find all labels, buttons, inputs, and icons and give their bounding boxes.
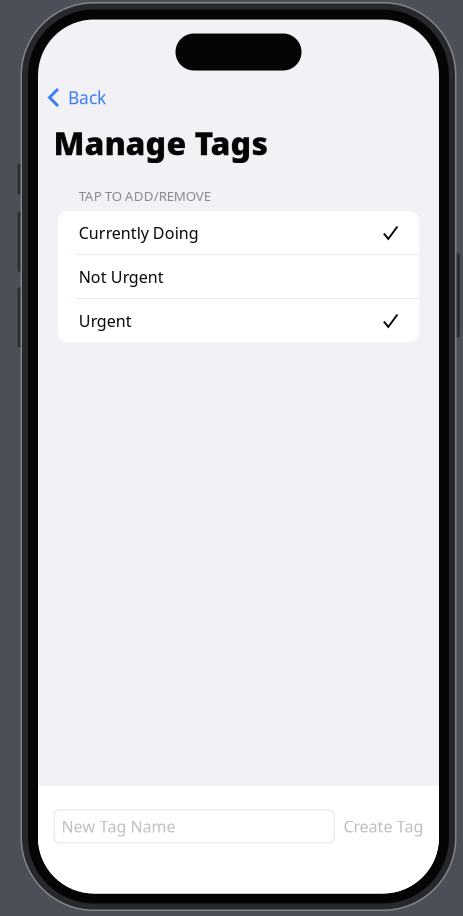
staticText: Back — [68, 86, 106, 109]
button[interactable]: Create Tag — [344, 816, 424, 837]
button[interactable]: Back — [38, 82, 439, 112]
button[interactable]: New Tag Name — [54, 810, 334, 843]
staticText: Urgent — [79, 310, 132, 331]
staticText: Create Tag — [344, 816, 424, 837]
staticText: Manage Tags — [53, 121, 268, 164]
button[interactable]: Urgent — [58, 299, 419, 342]
staticText: TAP TO ADD/REMOVE — [79, 187, 211, 205]
staticText: Currently Doing — [79, 222, 199, 243]
button[interactable]: Currently Doing — [58, 211, 419, 254]
staticText: Not Urgent — [79, 266, 164, 287]
staticText: New Tag Name — [61, 816, 175, 837]
button[interactable]: Not Urgent — [58, 255, 419, 298]
